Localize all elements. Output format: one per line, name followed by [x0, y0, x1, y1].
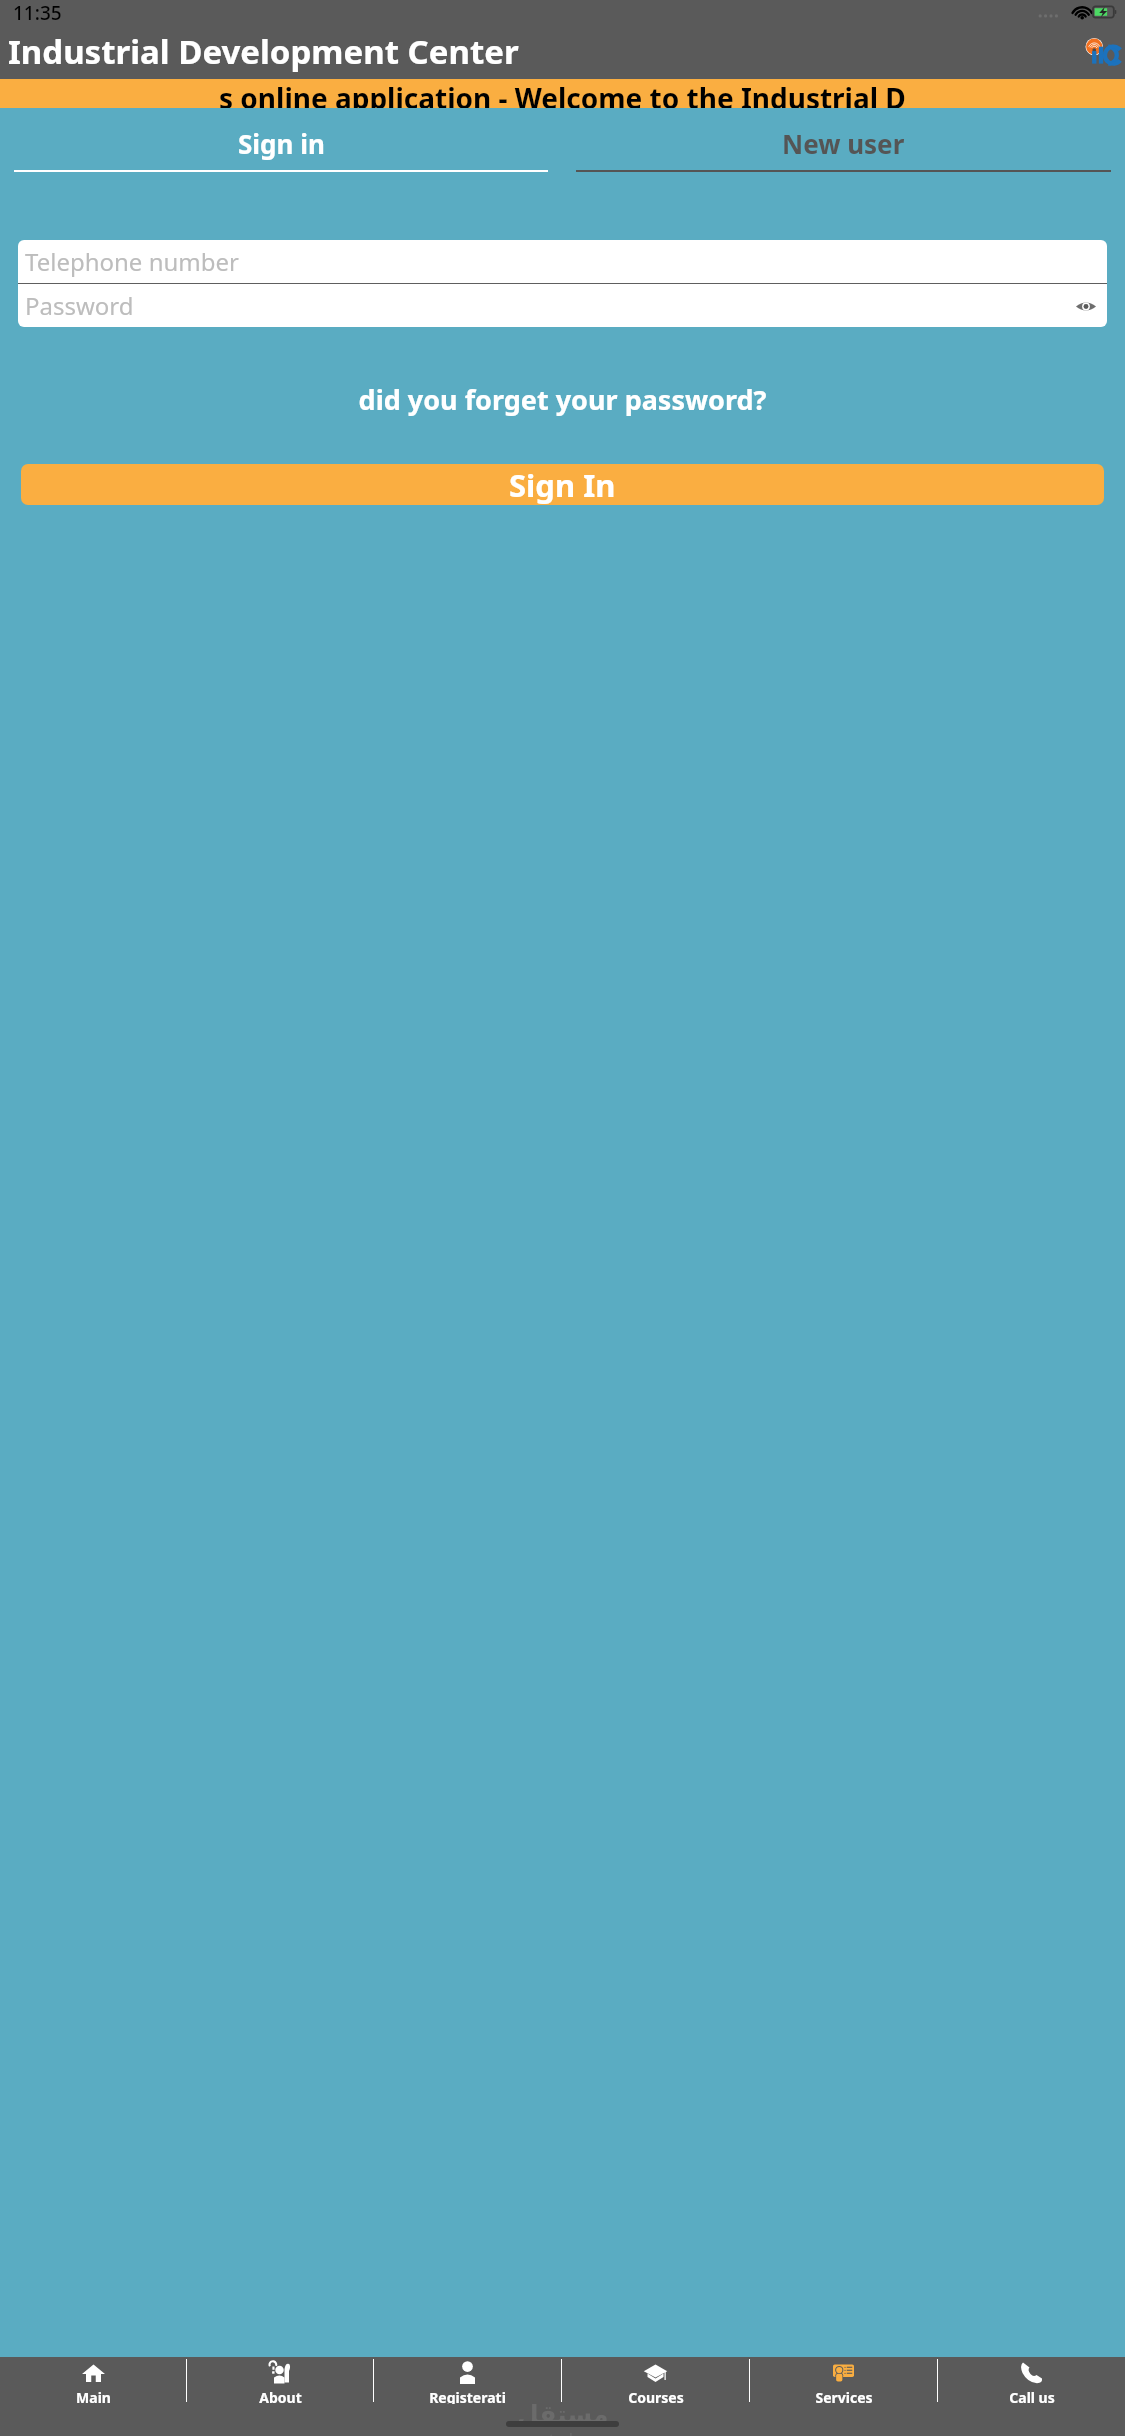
- staticText: Industrial Development Center: [8, 29, 519, 74]
- button[interactable]: Sign In: [21, 464, 1104, 505]
- button[interactable]: Courses: [562, 2357, 749, 2404]
- staticText: مستقل: [517, 2400, 609, 2429]
- button[interactable]: Call us: [938, 2357, 1125, 2404]
- button[interactable]: Telephone number: [18, 240, 1107, 283]
- button[interactable]: Show password: [1073, 293, 1099, 319]
- button[interactable]: did you forget your password?: [0, 375, 1125, 424]
- staticText: About: [259, 2388, 302, 2404]
- staticText: Registerati on: [429, 2388, 506, 2404]
- staticText: Telephone number: [25, 245, 239, 278]
- button[interactable]: Main: [0, 2357, 186, 2404]
- other: Services: [831, 2360, 856, 2385]
- staticText: Courses: [628, 2388, 684, 2404]
- other: Registeration: [455, 2360, 480, 2385]
- button[interactable]: New user: [562, 126, 1125, 172]
- other: Call us: [1019, 2360, 1044, 2385]
- other: About: [268, 2360, 293, 2385]
- button[interactable]: Registeration: [374, 2357, 561, 2404]
- button[interactable]: Password: [18, 284, 1107, 327]
- button[interactable]: About: [187, 2357, 373, 2404]
- staticText: Services: [815, 2388, 873, 2404]
- other: Main: [81, 2360, 106, 2385]
- other: Courses: [643, 2360, 668, 2385]
- staticText: New user: [782, 126, 905, 161]
- staticText: Call us: [1009, 2388, 1055, 2404]
- staticText: Password: [25, 289, 134, 322]
- button[interactable]: Sign in: [0, 126, 562, 172]
- staticText: Sign in: [238, 126, 325, 161]
- staticText: 11:35: [13, 0, 62, 24]
- button[interactable]: Services: [750, 2357, 937, 2404]
- staticText: Main: [76, 2388, 111, 2404]
- staticText: Sign In: [509, 464, 616, 505]
- staticText: s online application - Welcome to the In…: [219, 79, 906, 108]
